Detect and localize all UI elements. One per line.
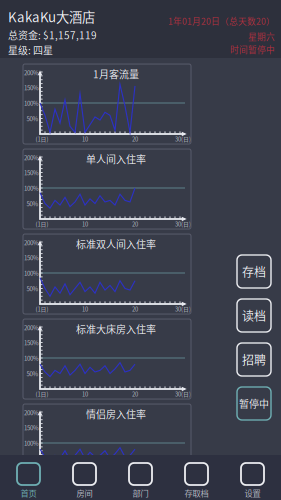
staticText: 时间暂停中: [230, 43, 275, 56]
staticText: 标准大床房入住率: [76, 322, 156, 336]
staticText: 星级: 四星: [8, 43, 53, 57]
staticText: 1年01月20日（总天数20）: [168, 15, 275, 27]
staticText: 10: [82, 220, 88, 228]
staticText: 50%: [26, 284, 38, 293]
staticText: KakaKu大酒店: [8, 7, 95, 26]
staticText: (日): [181, 135, 191, 143]
staticText: 150%: [24, 168, 39, 177]
staticText: (1日): [35, 390, 48, 398]
staticText: 房间: [76, 487, 92, 499]
staticText: 50%: [26, 369, 38, 378]
staticText: 200%: [24, 323, 39, 332]
staticText: 单人间入住率: [86, 152, 146, 166]
staticText: 首页: [20, 487, 36, 499]
staticText: 30: [175, 390, 181, 398]
staticText: 200%: [24, 68, 39, 77]
staticText: 200%: [24, 408, 39, 417]
staticText: 读档: [242, 307, 266, 324]
staticText: 总资金: $1,157,119: [8, 28, 97, 42]
staticText: 标准双人间入住率: [76, 237, 156, 251]
staticText: 10: [82, 305, 88, 313]
staticText: 30: [175, 220, 181, 228]
staticText: 20: [132, 220, 138, 228]
button[interactable]: 设置: [224, 455, 280, 500]
button[interactable]: 存取档: [168, 455, 224, 500]
button[interactable]: 暂停中: [237, 387, 271, 420]
staticText: 200%: [24, 238, 39, 247]
button[interactable]: 房间: [56, 455, 112, 500]
staticText: 存取档: [184, 487, 208, 499]
staticText: (1日): [35, 475, 48, 483]
staticText: (日): [181, 475, 191, 483]
staticText: 50%: [26, 454, 38, 463]
staticText: 150%: [24, 338, 39, 347]
staticText: (日): [181, 305, 191, 313]
staticText: 30: [175, 305, 181, 313]
staticText: (日): [181, 220, 191, 228]
staticText: 100%: [24, 269, 39, 277]
staticText: 部门: [132, 487, 148, 499]
button[interactable]: 读档: [237, 299, 271, 332]
staticText: 存档: [242, 263, 266, 280]
staticText: 200%: [24, 153, 39, 162]
staticText: 情侣房入住率: [86, 407, 146, 421]
staticText: 招聘: [242, 351, 266, 368]
staticText: 150%: [24, 253, 39, 262]
staticText: 10: [82, 135, 88, 143]
button[interactable]: 存档: [237, 255, 271, 288]
staticText: 20: [132, 305, 138, 313]
staticText: 暂停中: [239, 396, 269, 411]
staticText: 100%: [24, 354, 39, 362]
staticText: (日): [181, 390, 191, 398]
staticText: 100%: [24, 99, 39, 107]
staticText: (1日): [35, 135, 48, 143]
staticText: (1日): [35, 305, 48, 313]
staticText: 星期六: [248, 30, 275, 43]
staticText: 10: [82, 390, 88, 398]
staticText: 50%: [26, 199, 38, 208]
staticText: 150%: [24, 423, 39, 432]
staticText: 20: [132, 390, 138, 398]
staticText: 100%: [24, 184, 39, 192]
staticText: 30: [175, 135, 181, 143]
button[interactable]: 部门: [112, 455, 168, 500]
staticText: 100%: [24, 439, 39, 447]
staticText: 150%: [24, 83, 39, 92]
button[interactable]: 首页: [0, 455, 56, 500]
staticText: 1月客流量: [93, 67, 139, 81]
staticText: (1日): [35, 220, 48, 228]
button[interactable]: 招聘: [237, 343, 271, 376]
staticText: 设置: [244, 487, 260, 499]
staticText: 20: [132, 135, 138, 143]
staticText: 50%: [26, 114, 38, 123]
